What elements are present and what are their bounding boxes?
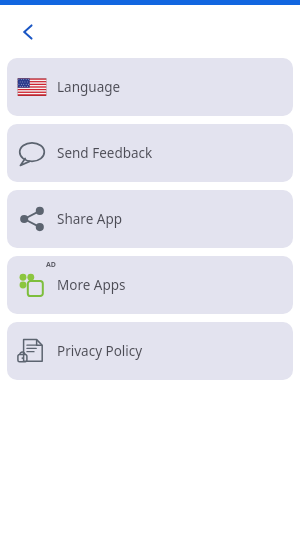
- button[interactable]: More Apps: [7, 256, 293, 314]
- button[interactable]: Back: [10, 14, 46, 50]
- staticText: Privacy Policy: [57, 342, 143, 360]
- button[interactable]: Share App: [7, 190, 293, 248]
- staticText: Send Feedback: [57, 144, 153, 162]
- staticText: Language: [57, 78, 121, 96]
- button[interactable]: Language: [7, 58, 293, 116]
- staticText: More Apps: [57, 276, 126, 294]
- button[interactable]: Send Feedback: [7, 124, 293, 182]
- staticText: Share App: [57, 210, 122, 228]
- staticText: AD: [46, 260, 56, 270]
- button[interactable]: Privacy Policy: [7, 322, 293, 380]
